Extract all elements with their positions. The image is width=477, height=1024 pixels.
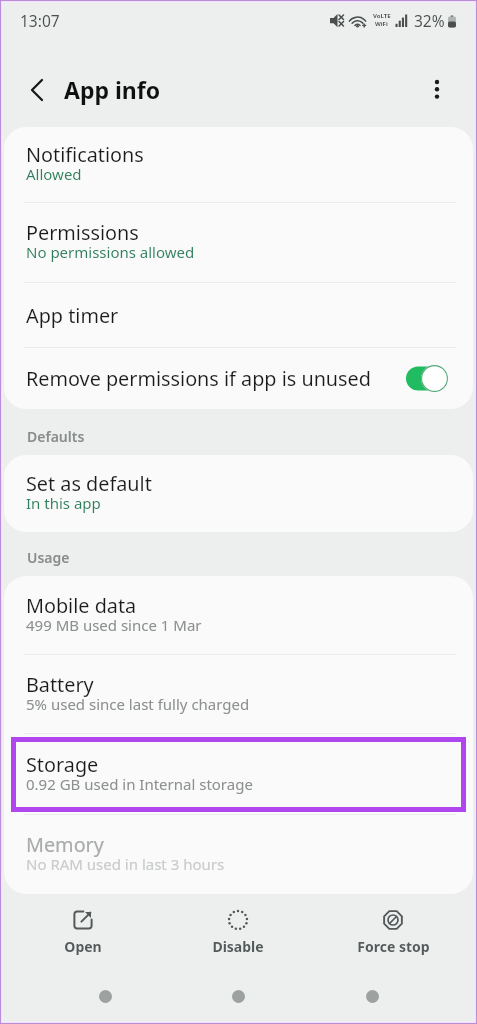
staticText: 0.92 GB used in Internal storage bbox=[26, 774, 253, 794]
button[interactable]: Open bbox=[20, 902, 146, 956]
staticText: No permissions allowed bbox=[26, 242, 195, 262]
staticText: WiFi bbox=[375, 20, 388, 28]
staticText: In this app bbox=[26, 493, 101, 513]
staticText: VoLTE bbox=[373, 12, 391, 20]
staticText: Remove permissions if app is unused bbox=[26, 365, 371, 392]
button[interactable]: Remove permissions if app is unused bbox=[405, 365, 448, 392]
staticText: 5% used since last fully charged bbox=[26, 694, 250, 714]
staticText: Permissions bbox=[26, 219, 139, 246]
staticText: Allowed bbox=[26, 164, 82, 184]
button[interactable]: Notifications bbox=[4, 127, 473, 202]
button[interactable]: Navigation button bbox=[83, 974, 127, 1018]
button[interactable]: Set as default bbox=[4, 455, 473, 532]
staticText: Battery bbox=[26, 671, 94, 698]
staticText: Notifications bbox=[26, 141, 144, 168]
staticText: No RAM used in last 3 hours bbox=[26, 854, 225, 874]
button[interactable]: Force stop bbox=[330, 902, 456, 956]
staticText: Usage bbox=[27, 548, 70, 567]
staticText: App info bbox=[64, 74, 161, 105]
button[interactable]: More options bbox=[415, 67, 459, 111]
staticText: Mobile data bbox=[26, 592, 137, 619]
staticText: Disable bbox=[212, 937, 264, 956]
staticText: Force stop bbox=[357, 937, 430, 956]
staticText: Storage bbox=[26, 751, 99, 778]
button[interactable]: Navigation button bbox=[350, 974, 394, 1018]
staticText: Defaults bbox=[27, 427, 85, 446]
staticText: Set as default bbox=[26, 470, 152, 497]
button[interactable]: Storage bbox=[4, 734, 473, 814]
staticText: 499 MB used since 1 Mar bbox=[26, 615, 202, 635]
staticText: Memory bbox=[26, 831, 104, 858]
staticText: Open bbox=[64, 937, 102, 956]
button[interactable]: Mobile data bbox=[4, 576, 473, 654]
button[interactable]: Battery bbox=[4, 655, 473, 733]
button[interactable]: Navigation button bbox=[216, 974, 260, 1018]
button[interactable]: App timer bbox=[4, 283, 473, 347]
button[interactable]: Disable bbox=[175, 902, 301, 956]
staticText: 32% bbox=[414, 10, 445, 31]
staticText: App timer bbox=[26, 302, 119, 329]
button[interactable]: Permissions bbox=[4, 203, 473, 282]
staticText: 13:07 bbox=[20, 10, 60, 31]
button[interactable]: Back bbox=[16, 68, 60, 112]
button[interactable]: Remove permissions if app is unused bbox=[4, 348, 473, 409]
button[interactable]: Memory bbox=[4, 815, 473, 894]
